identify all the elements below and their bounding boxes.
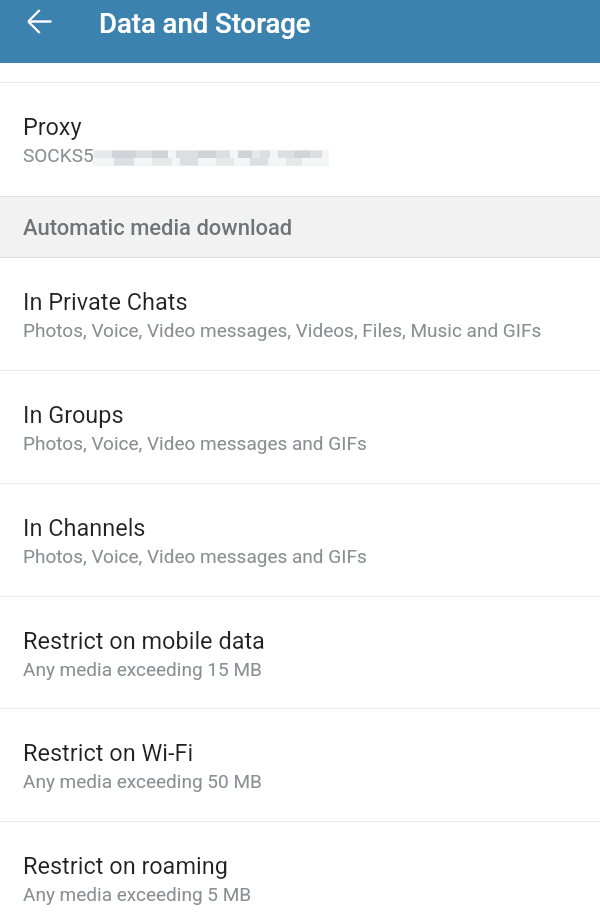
staticText: Restrict on Wi-Fi: [23, 739, 194, 767]
staticText: Proxy: [23, 113, 82, 141]
staticText: Restrict on roaming: [23, 852, 228, 880]
staticText: Any media exceeding 5 MB: [23, 883, 252, 905]
staticText: Any media exceeding 50 MB: [23, 770, 262, 792]
staticText: Photos, Voice, Video messages, Videos, F…: [23, 319, 542, 341]
button[interactable]: Proxy: [0, 83, 600, 196]
staticText: Automatic media download: [23, 215, 293, 241]
button[interactable]: Restrict on Wi-Fi: [0, 709, 600, 821]
button[interactable]: Restrict on mobile data: [0, 597, 600, 708]
staticText: Photos, Voice, Video messages and GIFs: [23, 545, 367, 567]
button[interactable]: Restrict on roaming: [0, 822, 600, 919]
button[interactable]: In Channels: [0, 484, 600, 596]
staticText: Restrict on mobile data: [23, 627, 265, 655]
staticText: In Groups: [23, 401, 124, 429]
staticText: Data and Storage: [99, 7, 311, 39]
staticText: Photos, Voice, Video messages and GIFs: [23, 432, 367, 454]
staticText: Any media exceeding 15 MB: [23, 658, 262, 680]
button[interactable]: Navigate up: [0, 0, 80, 63]
button[interactable]: In Groups: [0, 371, 600, 483]
staticText: In Private Chats: [23, 288, 188, 316]
staticText: SOCKS5: [23, 144, 94, 166]
staticText: In Channels: [23, 514, 146, 542]
button[interactable]: In Private Chats: [0, 258, 600, 370]
